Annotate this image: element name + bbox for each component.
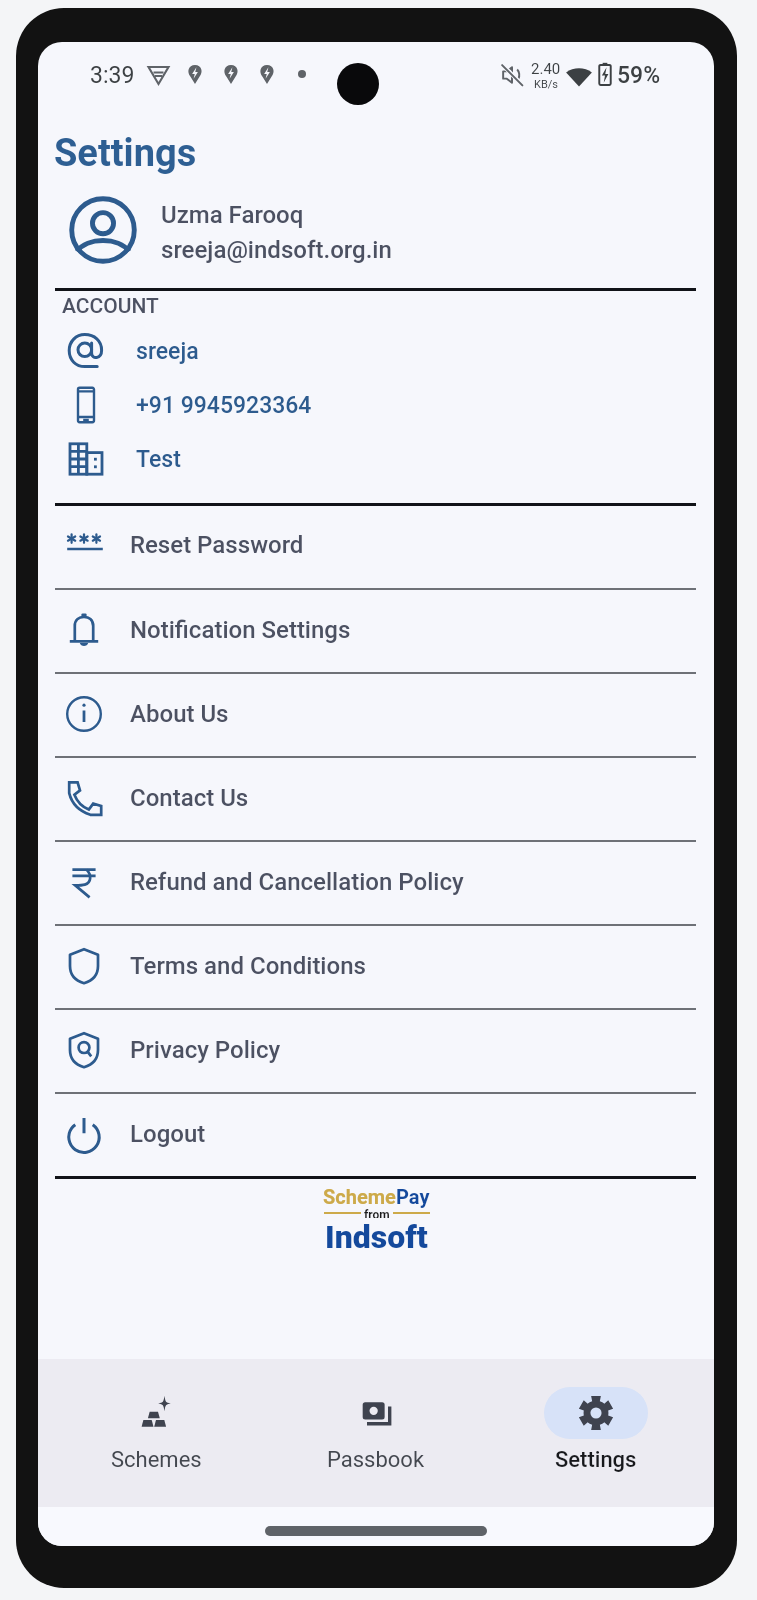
button[interactable]: About Us — [38, 672, 714, 756]
staticText: About Us — [130, 700, 229, 728]
staticText: Passbook — [327, 1447, 425, 1473]
staticText: KB/s — [534, 78, 558, 91]
button[interactable]: Reset Password — [38, 503, 714, 587]
staticText: Logout — [130, 1120, 206, 1148]
button[interactable]: Settings — [466, 1387, 714, 1497]
staticText: Uzma Farooq — [161, 201, 304, 229]
staticText: sreeja@indsoft.org.in — [161, 236, 392, 264]
button[interactable]: Notification Settings — [38, 588, 714, 672]
staticText: Privacy Policy — [130, 1036, 281, 1064]
staticText: Scheme — [323, 1185, 396, 1208]
staticText: Terms and Conditions — [130, 952, 366, 980]
button[interactable]: +91 9945923364 — [38, 378, 714, 432]
staticText: Settings — [555, 1447, 637, 1473]
staticText: Test — [136, 446, 181, 473]
staticText: Schemes — [111, 1447, 202, 1473]
button[interactable]: Privacy Policy — [38, 1008, 714, 1092]
staticText: 2.40 — [531, 60, 561, 78]
button[interactable]: Contact Us — [38, 756, 714, 840]
staticText: +91 9945923364 — [136, 392, 312, 419]
button[interactable]: Passbook — [246, 1387, 506, 1497]
staticText: sreeja — [136, 338, 199, 365]
button[interactable]: sreeja — [38, 324, 714, 378]
button[interactable]: Refund and Cancellation Policy — [38, 840, 714, 924]
staticText: 3:39 — [90, 62, 135, 89]
staticText: Contact Us — [130, 784, 249, 812]
button[interactable]: Test — [38, 432, 714, 486]
staticText: Refund and Cancellation Policy — [130, 868, 464, 896]
button[interactable]: Logout — [38, 1092, 714, 1176]
staticText: Indsoft — [325, 1218, 428, 1256]
staticText: Notification Settings — [130, 616, 351, 644]
button[interactable]: Terms and Conditions — [38, 924, 714, 1008]
staticText: ACCOUNT — [62, 294, 159, 319]
button[interactable]: Schemes — [38, 1387, 286, 1497]
staticText: Reset Password — [130, 531, 304, 559]
staticText: from — [364, 1208, 390, 1218]
staticText: Pay — [396, 1185, 430, 1208]
staticText: Settings — [54, 131, 197, 176]
staticText: 59% — [617, 62, 661, 89]
